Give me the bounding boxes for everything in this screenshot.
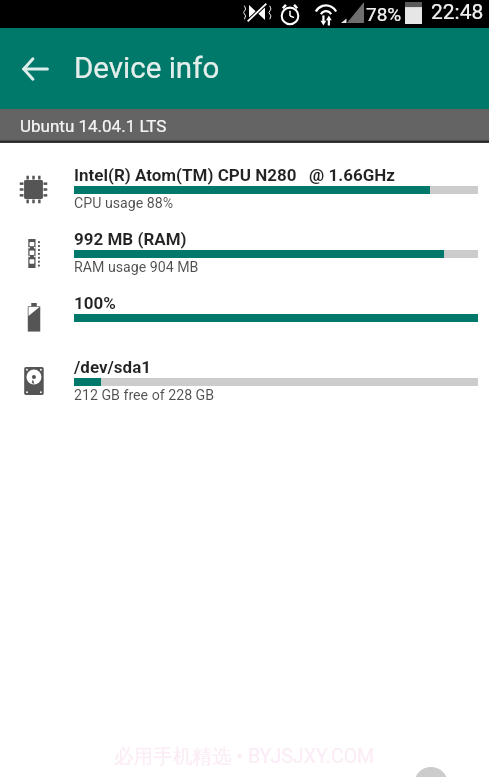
staticText: 22:48 xyxy=(431,0,484,25)
button[interactable]: /dev/sda1 xyxy=(0,357,489,421)
staticText: Device info xyxy=(74,51,220,86)
staticText: /dev/sda1 xyxy=(74,357,152,377)
button[interactable]: 100% xyxy=(0,293,489,357)
staticText: Ubuntu 14.04.1 LTS xyxy=(20,116,167,136)
button[interactable]: 992 MB (RAM) xyxy=(0,229,489,293)
staticText: 100% xyxy=(74,293,116,313)
staticText: 必用手机精选 • BYJSJXY.COM xyxy=(114,744,375,769)
button[interactable]: Back xyxy=(6,40,64,98)
button[interactable]: Intel(R) Atom(TM) CPU N280 @ 1.66GHz xyxy=(0,165,489,229)
staticText: CPU usage 88% xyxy=(74,195,174,212)
staticText: 78% xyxy=(366,3,402,25)
staticText: Intel(R) Atom(TM) CPU N280 @ 1.66GHz xyxy=(74,165,395,185)
staticText: 212 GB free of 228 GB xyxy=(74,387,215,404)
button[interactable]: Refresh xyxy=(414,767,448,777)
staticText: 992 MB (RAM) xyxy=(74,229,187,249)
staticText: RAM usage 904 MB xyxy=(74,259,199,276)
